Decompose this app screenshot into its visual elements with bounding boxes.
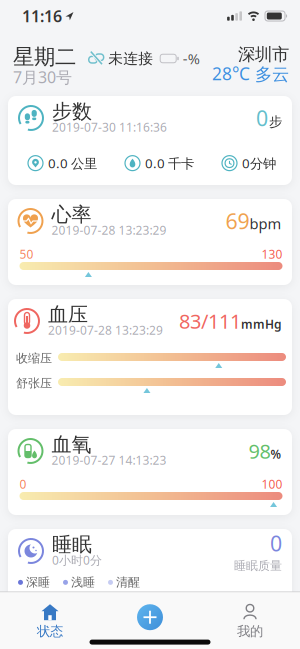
staticText: 0.0 千卡 [145, 154, 194, 172]
staticText: 69 [225, 207, 249, 235]
staticText: 0分钟 [242, 154, 276, 172]
staticText: 睡眠质量 [234, 558, 282, 573]
button[interactable]: 睡眠 [8, 529, 292, 613]
staticText: 深圳市 [238, 44, 289, 65]
staticText: 状态 [37, 623, 63, 640]
staticText: 2019-07-28 13:23:29 [48, 322, 163, 338]
button[interactable]: 我的 [200, 604, 300, 640]
staticText: 步数 [52, 99, 92, 124]
staticText: -% [183, 49, 200, 68]
staticText: 0 [19, 476, 26, 492]
staticText: 舒张压 [16, 376, 52, 391]
staticText: 睡眠 [52, 532, 92, 557]
staticText: mmHg [241, 316, 282, 332]
staticText: 血压 [48, 302, 88, 327]
staticText: 0.0 公里 [48, 154, 97, 172]
staticText: 0 [256, 104, 268, 132]
button[interactable]: 状态 [0, 604, 100, 640]
staticText: 2019-07-28 13:23:29 [51, 222, 166, 238]
staticText: 100 [261, 476, 282, 492]
staticText: 浅睡 [71, 575, 95, 590]
staticText: 50 [19, 246, 33, 262]
button[interactable]: 步数 [8, 96, 292, 185]
staticText: 2019-07-27 14:13:23 [51, 452, 166, 468]
staticText: 心率 [51, 202, 91, 227]
staticText: 0 [270, 529, 282, 557]
staticText: 深睡 [26, 575, 50, 590]
staticText: 28°C 多云 [212, 62, 289, 85]
button[interactable]: 血压 [8, 299, 292, 415]
staticText: 0小时0分 [52, 552, 102, 568]
staticText: bpm [249, 214, 281, 233]
button[interactable]: 添加 [100, 604, 200, 630]
staticText: 星期二 [13, 44, 76, 70]
staticText: 2019-07-30 11:16:36 [52, 119, 167, 135]
staticText: 130 [261, 246, 282, 262]
staticText: 11:16 [22, 5, 62, 27]
staticText: 我的 [237, 623, 263, 640]
staticText: 收缩压 [16, 351, 52, 366]
button[interactable]: 心率 [8, 199, 292, 285]
staticText: 98 [248, 438, 270, 464]
staticText: 步 [269, 114, 282, 130]
staticText: 7月30号 [13, 66, 72, 88]
staticText: 未连接 [108, 49, 153, 67]
staticText: 83/111 [179, 308, 241, 334]
staticText: 血氧 [51, 432, 91, 457]
staticText: % [270, 446, 281, 462]
staticText: 清醒 [116, 575, 140, 590]
button[interactable]: 血氧 [8, 429, 292, 515]
